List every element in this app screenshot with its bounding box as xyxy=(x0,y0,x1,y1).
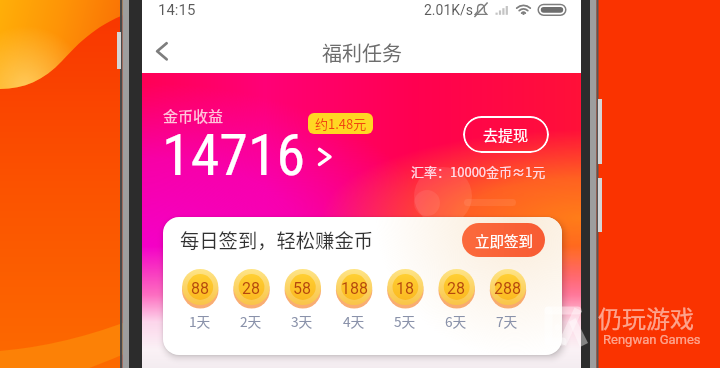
staticText: 1天 xyxy=(189,311,211,331)
staticText: 约1.48元 xyxy=(315,114,367,133)
button[interactable]: 188 xyxy=(329,270,379,306)
staticText: 5天 xyxy=(394,311,416,331)
staticText: 28 xyxy=(447,279,465,298)
button[interactable]: 18 xyxy=(380,270,430,306)
staticText: 7天 xyxy=(496,311,518,331)
staticText: 4天 xyxy=(343,311,365,331)
staticText: 2.01K/s xyxy=(424,2,474,18)
staticText: 28 xyxy=(242,279,260,298)
staticText: 金币收益 xyxy=(163,105,224,127)
staticText: 14716 xyxy=(162,121,306,189)
staticText: 2天 xyxy=(240,311,262,331)
button[interactable]: 88 xyxy=(175,270,225,306)
button[interactable]: 288 xyxy=(482,270,532,306)
button[interactable]: 28 xyxy=(226,270,276,306)
button[interactable]: 去提现 xyxy=(463,116,549,153)
staticText: 福利任务 xyxy=(322,38,402,67)
staticText: 188 xyxy=(341,279,368,298)
button[interactable]: 28 xyxy=(431,270,481,306)
staticText: 88 xyxy=(191,279,209,298)
staticText: 58 xyxy=(293,279,311,298)
button[interactable]: 约1.48元 xyxy=(308,113,373,134)
staticText: 14:15 xyxy=(158,1,196,19)
staticText: 去提现 xyxy=(483,124,529,146)
staticText: 立即签到 xyxy=(475,230,533,251)
button[interactable]: 立即签到 xyxy=(462,223,545,257)
button[interactable]: 58 xyxy=(277,270,327,306)
staticText: 288 xyxy=(494,279,521,298)
staticText: 每日签到，轻松赚金币 xyxy=(180,226,373,252)
staticText: 18 xyxy=(396,279,414,298)
staticText: 汇率：10000金币≈1元 xyxy=(411,162,546,181)
button[interactable]: Back xyxy=(142,29,184,73)
staticText: 3天 xyxy=(291,311,313,331)
staticText: Rengwan Games xyxy=(603,332,701,347)
staticText: 仍玩游戏 xyxy=(598,300,694,335)
staticText: 6天 xyxy=(445,311,467,331)
